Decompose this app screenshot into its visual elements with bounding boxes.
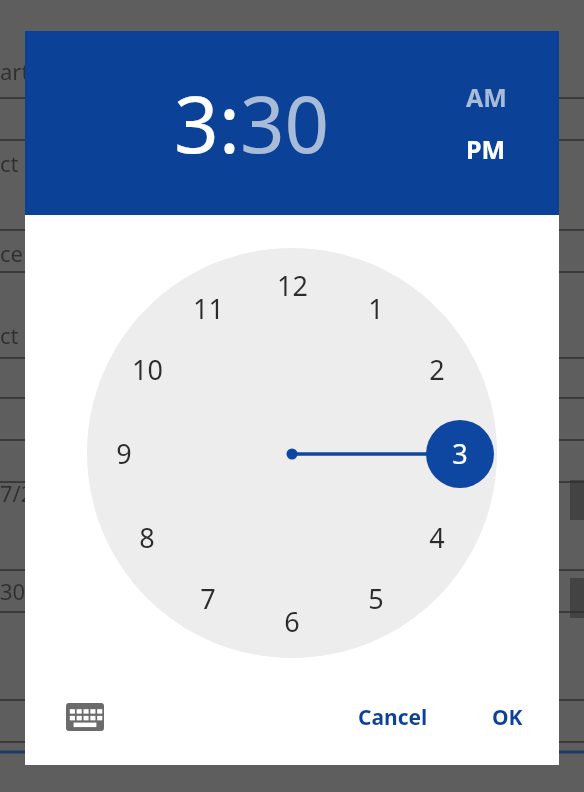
- staticText: 12: [277, 267, 308, 304]
- button[interactable]: 3: [174, 70, 219, 176]
- staticText: artm: [0, 56, 50, 86]
- staticText: 9: [116, 435, 132, 472]
- staticText: ct C: [0, 148, 39, 178]
- button[interactable]: 5: [352, 574, 400, 622]
- staticText: 3: [174, 70, 219, 176]
- staticText: 2: [429, 351, 445, 388]
- button[interactable]: 11: [184, 284, 232, 332]
- staticText: 7: [200, 580, 216, 617]
- staticText: PM: [466, 132, 506, 166]
- staticText: Cancel: [358, 703, 428, 732]
- button[interactable]: 1: [352, 284, 400, 332]
- button[interactable]: PM: [466, 132, 506, 166]
- button[interactable]: 2: [413, 345, 461, 393]
- button[interactable]: 8: [123, 513, 171, 561]
- staticText: OK: [492, 703, 523, 732]
- staticText: 10: [132, 351, 163, 388]
- button[interactable]: AM: [466, 80, 507, 114]
- staticText: 30: [0, 576, 26, 606]
- button[interactable]: 12: [268, 261, 316, 309]
- staticText: 11: [193, 290, 224, 327]
- button[interactable]: 3: [436, 429, 484, 477]
- button[interactable]: OK: [478, 693, 537, 742]
- button[interactable]: 30: [240, 70, 330, 176]
- button[interactable]: Cancel: [344, 693, 442, 742]
- staticText: ct C: [0, 320, 39, 350]
- staticText: 8: [139, 519, 155, 556]
- staticText: 7/28: [0, 478, 46, 508]
- button[interactable]: 10: [123, 345, 171, 393]
- staticText: 4: [429, 519, 445, 556]
- staticText: 1: [368, 290, 384, 327]
- button[interactable]: 4: [413, 513, 461, 561]
- button[interactable]: 6: [268, 597, 316, 645]
- staticText: 3: [452, 435, 468, 472]
- staticText: AM: [466, 80, 507, 114]
- staticText: ce: [0, 238, 23, 268]
- staticText: 30: [240, 70, 330, 176]
- button[interactable]: Switch to text input: [57, 689, 113, 745]
- staticText: 6: [284, 603, 300, 640]
- button[interactable]: 7: [184, 574, 232, 622]
- staticText: :: [219, 70, 240, 176]
- staticText: 5: [368, 580, 384, 617]
- button[interactable]: 9: [100, 429, 148, 477]
